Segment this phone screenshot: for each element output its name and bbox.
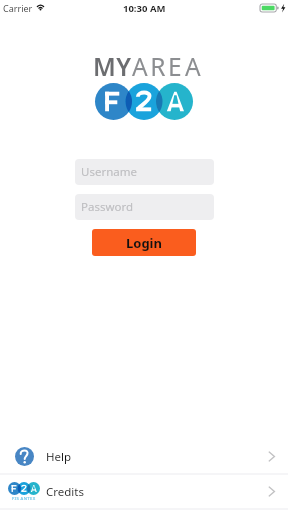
staticText: MY [93,50,132,83]
staticText: FIS ANTEX [12,496,36,502]
button[interactable]: FIS ANTEX [0,475,288,508]
staticText: Carrier [3,2,33,14]
staticText: ARE [132,50,185,83]
button[interactable]: Username [75,159,214,185]
staticText: Username [81,164,137,180]
button[interactable]: Login [92,229,196,256]
staticText: Help [46,449,72,465]
staticText: Login [126,234,162,252]
other: Help [15,447,34,466]
staticText: Password [81,199,134,215]
button[interactable]: Password [75,194,214,220]
staticText: Credits [46,484,84,500]
button[interactable]: Help [0,440,288,473]
staticText: A [185,50,201,83]
staticText: 10:30 AM [123,2,166,15]
